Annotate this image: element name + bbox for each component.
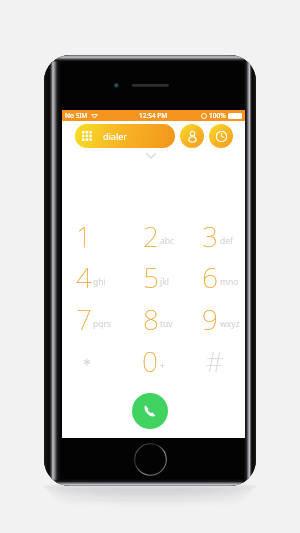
staticText: 7 [76, 300, 92, 332]
staticText: 1 [76, 217, 92, 249]
staticText: tuv [160, 318, 173, 330]
button[interactable]: Contacts [180, 124, 204, 148]
button[interactable] [186, 214, 246, 255]
button[interactable] [126, 339, 186, 380]
staticText: def [220, 235, 233, 247]
staticText: 3 [202, 217, 218, 249]
staticText: No SIM [65, 111, 88, 120]
button[interactable] [60, 298, 120, 339]
staticText: 2 [143, 217, 159, 249]
staticText: abc [160, 235, 175, 247]
staticText: 9 [202, 300, 218, 332]
button[interactable] [60, 256, 120, 297]
staticText: 12:54 PM [139, 111, 168, 120]
staticText: ghi [93, 276, 106, 288]
button[interactable]: Recents [209, 124, 233, 148]
button[interactable] [127, 214, 187, 255]
button[interactable] [127, 256, 187, 297]
button[interactable] [127, 298, 187, 339]
staticText: 6 [202, 258, 218, 290]
staticText: + [160, 360, 165, 372]
button[interactable] [186, 256, 246, 297]
button[interactable] [60, 214, 120, 255]
button[interactable] [190, 339, 250, 380]
staticText: jkl [160, 276, 169, 288]
button[interactable]: dialer [75, 124, 175, 148]
staticText: 5 [143, 258, 159, 290]
staticText: pqrs [93, 318, 112, 330]
staticText: wxyz [220, 318, 240, 330]
staticText: 100% [209, 111, 226, 120]
staticText: 4 [76, 258, 92, 290]
staticText: # [205, 342, 224, 374]
staticText: mno [220, 276, 239, 288]
staticText: dialer [103, 130, 128, 142]
staticText: 8 [143, 300, 159, 332]
button[interactable] [186, 298, 246, 339]
button[interactable] [63, 339, 123, 380]
button[interactable]: Call [132, 393, 168, 429]
staticText: 0 [142, 342, 158, 374]
